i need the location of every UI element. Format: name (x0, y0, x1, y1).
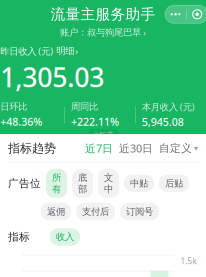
staticText: +222.11% (71, 114, 119, 129)
staticText: 订阅号 (126, 206, 153, 217)
staticText: 近30日 (119, 141, 153, 155)
staticText: +48.36% (0, 114, 42, 129)
button[interactable]: More (165, 5, 186, 23)
staticText: 周同比 (71, 101, 98, 112)
staticText: 1,305.03 (0, 59, 104, 94)
staticText: 1.5k (180, 256, 196, 266)
staticText: 昨日收入 (元) (0, 45, 53, 57)
staticText: ▾ (194, 144, 198, 153)
staticText: 5,945.08 (142, 115, 184, 129)
staticText: 收入 (56, 231, 74, 243)
staticText: 近7日 (85, 141, 113, 155)
button[interactable]: 中贴 (124, 175, 154, 192)
staticText: 文中 (104, 172, 113, 195)
staticText: 返佣 (47, 206, 65, 217)
staticText: 底部 (78, 172, 87, 195)
button[interactable]: 返佣 (41, 203, 71, 220)
staticText: 后贴 (165, 178, 183, 189)
button[interactable]: Close (187, 5, 206, 23)
button[interactable]: 收入 (50, 228, 80, 246)
button[interactable]: 近7日 (82, 141, 116, 155)
staticText: 所有 (52, 172, 61, 195)
staticText: › (75, 45, 78, 57)
staticText: 指标趋势 (8, 141, 56, 156)
staticText: 支付后 (82, 206, 109, 217)
button[interactable]: 文中 (98, 169, 119, 198)
staticText: 日环比 (0, 101, 27, 112)
staticText: 自定义 (159, 142, 192, 155)
button[interactable]: 底部 (72, 169, 93, 198)
button[interactable]: 账户：叔与狗尾巴草 (0, 25, 206, 40)
staticText: 本月收入 (元) (142, 100, 195, 113)
button[interactable]: 后贴 (159, 175, 189, 192)
staticText: 广告位 (8, 177, 41, 190)
staticText: 中贴 (130, 178, 148, 189)
staticText: 流量主服务助手 (50, 5, 155, 23)
staticText: 指标 (8, 230, 30, 243)
staticText: 明细 (56, 45, 74, 57)
button[interactable]: 支付后 (76, 203, 115, 220)
button[interactable]: 明细 (56, 45, 78, 57)
button[interactable]: 自定义 (156, 142, 198, 155)
staticText: › (143, 26, 146, 39)
staticText: 小红书 (92, 131, 113, 139)
staticText: 账户：叔与狗尾巴草 (60, 27, 141, 38)
button[interactable]: 订阅号 (120, 203, 159, 220)
button[interactable]: 近30日 (116, 141, 156, 155)
button[interactable]: 所有 (46, 169, 67, 198)
